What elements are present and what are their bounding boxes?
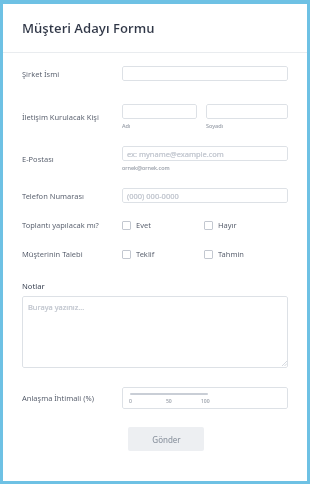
button[interactable]: (000) 000-0000: [122, 188, 288, 203]
staticText: ex: myname@example.com: [127, 149, 224, 159]
staticText: Buraya yazınız...: [28, 302, 85, 312]
staticText: Gönder: [152, 434, 181, 445]
staticText: Anlaşma İhtimali (%): [22, 393, 122, 403]
staticText: Şirket İsmi: [22, 69, 122, 79]
staticText: Teklif: [136, 249, 155, 259]
staticText: 50: [166, 398, 172, 405]
staticText: ornek@ornek.com: [122, 164, 170, 171]
staticText: Adı: [122, 122, 131, 129]
button[interactable]: [122, 66, 288, 81]
button[interactable]: [122, 104, 197, 119]
staticText: Tahmin: [218, 249, 244, 259]
staticText: İletişim Kurulacak Kişi: [22, 112, 122, 122]
staticText: Müşterinin Talebi: [22, 249, 122, 259]
button[interactable]: Teklif: [122, 249, 204, 259]
button[interactable]: 0: [122, 387, 288, 409]
button[interactable]: Evet: [122, 220, 204, 230]
staticText: Hayır: [218, 220, 237, 230]
button[interactable]: Hayır: [204, 220, 237, 230]
button[interactable]: Buraya yazınız...: [22, 296, 288, 368]
button[interactable]: ex: myname@example.com: [122, 146, 288, 161]
staticText: Müşteri Adayı Formu: [22, 19, 155, 37]
staticText: 0: [129, 398, 132, 405]
staticText: Telefon Numarası: [22, 191, 122, 201]
staticText: Soyadı: [206, 122, 223, 129]
staticText: Notlar: [22, 281, 45, 291]
staticText: E-Postası: [22, 154, 122, 164]
staticText: Evet: [136, 220, 151, 230]
staticText: 100: [201, 398, 210, 405]
staticText: Toplantı yapılacak mı?: [22, 220, 122, 230]
button[interactable]: [206, 104, 288, 119]
button[interactable]: Tahmin: [204, 249, 244, 259]
button[interactable]: Gönder: [128, 427, 204, 451]
staticText: (000) 000-0000: [127, 191, 179, 201]
